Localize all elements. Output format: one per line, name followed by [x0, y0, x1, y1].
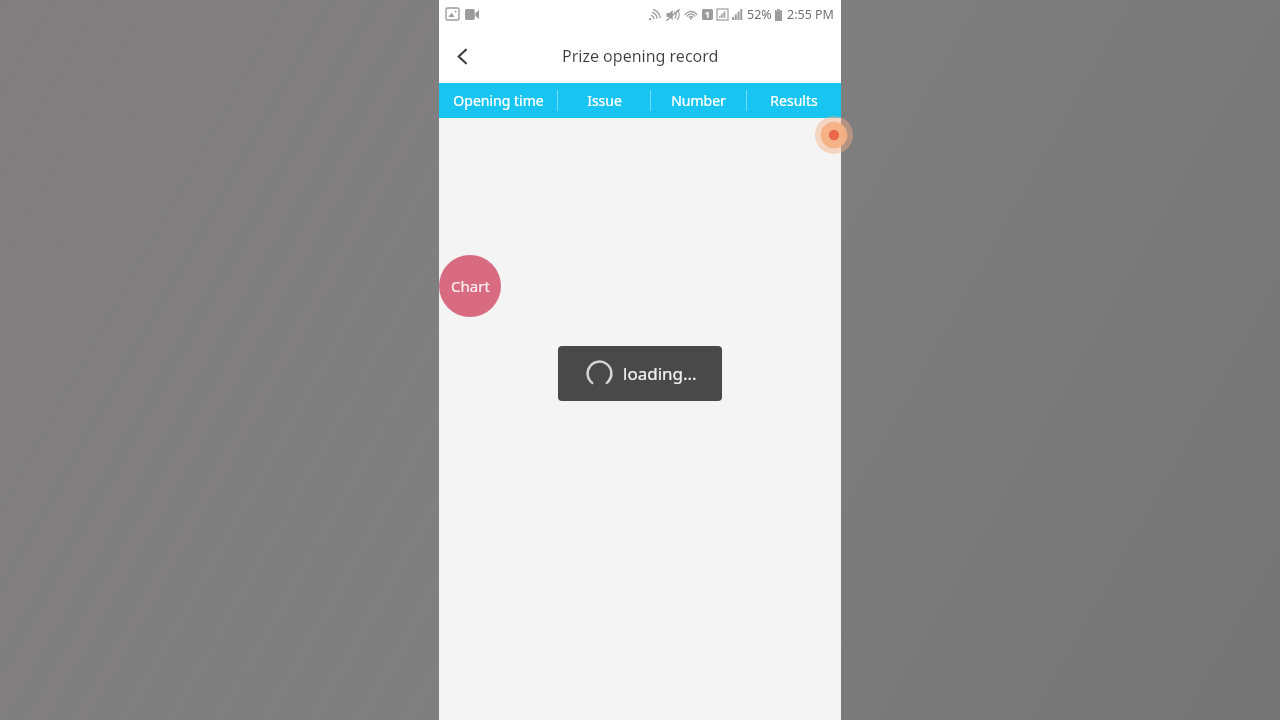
button[interactable]: Back — [439, 33, 485, 79]
button[interactable]: Issue — [558, 83, 650, 118]
staticText: 1 — [705, 9, 710, 20]
staticText: Opening time — [453, 91, 544, 110]
staticText: Issue — [587, 91, 622, 110]
staticText: 52% — [747, 6, 772, 23]
button[interactable]: Target marker — [815, 116, 853, 154]
staticText: Number — [671, 91, 726, 110]
button[interactable]: Results — [747, 83, 841, 118]
staticText: Chart — [451, 276, 490, 296]
button[interactable]: Chart — [439, 255, 501, 317]
staticText: loading... — [623, 362, 697, 385]
staticText: Prize opening record — [562, 45, 719, 67]
button[interactable]: Opening time — [439, 83, 557, 118]
button[interactable]: Number — [651, 83, 746, 118]
staticText: Results — [770, 91, 818, 110]
staticText: 2:55 PM — [787, 6, 834, 23]
